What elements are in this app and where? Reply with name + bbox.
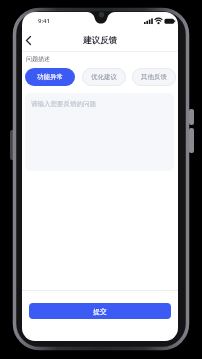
button[interactable]: 提交	[29, 303, 171, 319]
staticText: 请输入您要反馈的问题	[31, 100, 96, 108]
staticText: 问题描述	[26, 55, 50, 63]
staticText: 其他反馈	[141, 73, 167, 81]
button[interactable]: 优化建议	[82, 68, 126, 86]
button[interactable]: 功能异常	[25, 68, 75, 86]
button[interactable]: 请输入您要反馈的问题	[25, 93, 174, 171]
button[interactable]	[22, 31, 38, 49]
staticText: 建议反馈	[22, 35, 178, 47]
staticText: 优化建议	[91, 73, 117, 81]
button[interactable]: 其他反馈	[132, 68, 176, 86]
staticText: 9:41	[38, 17, 50, 25]
staticText: 功能异常	[37, 73, 63, 81]
staticText: 提交	[93, 307, 107, 316]
